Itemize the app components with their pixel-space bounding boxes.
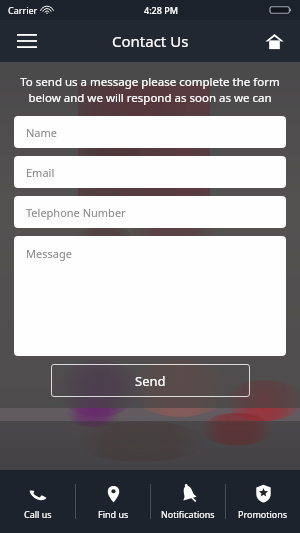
button[interactable]: Telephone Number [14, 196, 286, 228]
staticText: Name [26, 125, 58, 140]
button[interactable]: Call us [0, 470, 75, 533]
staticText: 4:28 PM [144, 4, 178, 16]
button[interactable]: Home [258, 25, 290, 57]
button[interactable]: Menu [10, 24, 44, 58]
staticText: Find us [98, 508, 129, 520]
staticText: Notifications [161, 508, 215, 520]
staticText: Promotions [238, 508, 288, 520]
button[interactable]: Send [51, 364, 250, 397]
button[interactable]: Email [14, 156, 286, 188]
staticText: Carrier [8, 4, 38, 16]
button[interactable]: Name [14, 116, 286, 148]
staticText: To send us a message please complete the… [14, 74, 286, 105]
staticText: Message [26, 246, 72, 261]
staticText: Contact Us [112, 31, 189, 51]
button[interactable]: Promotions [226, 470, 300, 533]
button[interactable]: Notifications [151, 470, 225, 533]
staticText: Send [135, 372, 166, 390]
staticText: Email [26, 165, 55, 180]
button[interactable]: Message [14, 236, 286, 356]
staticText: Telephone Number [26, 205, 126, 220]
button[interactable]: Find us [76, 470, 150, 533]
staticText: Call us [24, 508, 52, 520]
